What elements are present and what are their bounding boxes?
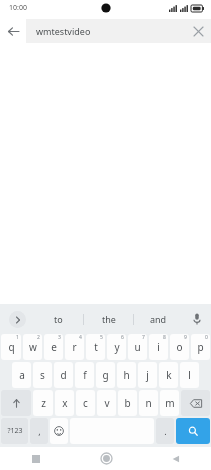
staticText: w xyxy=(29,340,37,354)
button[interactable]: m xyxy=(160,390,179,416)
staticText: j xyxy=(146,368,149,382)
button[interactable]: l xyxy=(180,362,199,388)
staticText: 5 xyxy=(100,334,103,341)
staticText: p xyxy=(197,340,204,354)
button[interactable]: v xyxy=(97,390,116,416)
button[interactable]: n xyxy=(139,390,158,416)
staticText: c xyxy=(83,396,88,410)
staticText: m xyxy=(165,396,175,410)
staticText: r xyxy=(72,340,77,354)
button[interactable]: Backspace xyxy=(181,390,210,416)
button[interactable]: h xyxy=(117,362,136,388)
staticText: s xyxy=(40,368,45,382)
staticText: 2 xyxy=(37,334,40,341)
staticText: 10:00 xyxy=(9,3,27,13)
button[interactable]: b xyxy=(118,390,137,416)
button[interactable]: to xyxy=(34,304,83,334)
button[interactable]: Back xyxy=(141,447,211,470)
staticText: 9 xyxy=(184,334,187,341)
button[interactable]: Search xyxy=(176,418,210,444)
button[interactable]: g xyxy=(96,362,115,388)
button[interactable]: . xyxy=(156,418,174,444)
button[interactable]: i xyxy=(149,334,168,360)
staticText: . xyxy=(164,425,167,437)
button[interactable]: q xyxy=(1,334,21,360)
staticText: 6 xyxy=(121,334,124,341)
staticText: v xyxy=(104,396,110,410)
button[interactable]: and xyxy=(134,304,183,334)
staticText: n xyxy=(145,396,152,410)
staticText: o xyxy=(176,340,183,354)
button[interactable]: r xyxy=(65,334,84,360)
staticText: d xyxy=(60,368,67,382)
staticText: y xyxy=(114,340,120,354)
button[interactable]: p xyxy=(191,334,210,360)
button[interactable]: y xyxy=(107,334,126,360)
button[interactable]: d xyxy=(54,362,73,388)
button[interactable]: z xyxy=(33,390,53,416)
staticText: a xyxy=(19,368,25,382)
button[interactable]: Back xyxy=(0,16,26,46)
staticText: u xyxy=(134,340,141,354)
staticText: z xyxy=(41,396,46,410)
button[interactable]: Recents xyxy=(0,447,71,470)
button[interactable]: Shift xyxy=(1,390,31,416)
staticText: f xyxy=(83,368,87,382)
staticText: 8 xyxy=(163,334,166,341)
staticText: l xyxy=(188,368,191,382)
staticText: h xyxy=(123,368,130,382)
staticText: g xyxy=(102,368,109,382)
button[interactable]: o xyxy=(170,334,189,360)
staticText: 1 xyxy=(16,334,19,341)
staticText: x xyxy=(62,396,68,410)
button[interactable]: x xyxy=(55,390,74,416)
staticText: k xyxy=(166,368,172,382)
staticText: the xyxy=(102,313,116,325)
button[interactable]: Voice input xyxy=(183,304,211,334)
button[interactable]: ?123 xyxy=(1,418,28,444)
staticText: wmtestvideo xyxy=(36,25,185,37)
button[interactable]: e xyxy=(44,334,63,360)
button[interactable]: f xyxy=(75,362,94,388)
staticText: t xyxy=(94,340,98,354)
button[interactable]: Clear xyxy=(185,19,211,43)
staticText: 4 xyxy=(79,334,82,341)
button[interactable]: , xyxy=(30,418,48,444)
staticText: , xyxy=(38,425,41,437)
button[interactable]: w xyxy=(23,334,42,360)
staticText: q xyxy=(8,340,15,354)
button[interactable]: k xyxy=(159,362,178,388)
button[interactable]: a xyxy=(12,362,31,388)
staticText: and xyxy=(150,313,167,325)
button[interactable]: c xyxy=(76,390,95,416)
button[interactable]: wmtestvideo xyxy=(26,19,211,43)
button[interactable]: j xyxy=(138,362,157,388)
staticText: b xyxy=(124,396,131,410)
button[interactable]: u xyxy=(128,334,147,360)
button[interactable]: Emoji xyxy=(50,418,68,444)
staticText: i xyxy=(157,340,160,354)
button[interactable]: s xyxy=(33,362,52,388)
staticText: ?123 xyxy=(7,426,23,436)
button[interactable]: More suggestions xyxy=(0,304,34,334)
staticText: e xyxy=(51,340,57,354)
button[interactable]: t xyxy=(86,334,105,360)
staticText: to xyxy=(54,313,63,325)
staticText: 7 xyxy=(142,334,145,341)
staticText: 0 xyxy=(205,334,208,341)
button[interactable]: the xyxy=(84,304,133,334)
button[interactable]: Home xyxy=(71,447,141,470)
staticText: 3 xyxy=(58,334,61,341)
